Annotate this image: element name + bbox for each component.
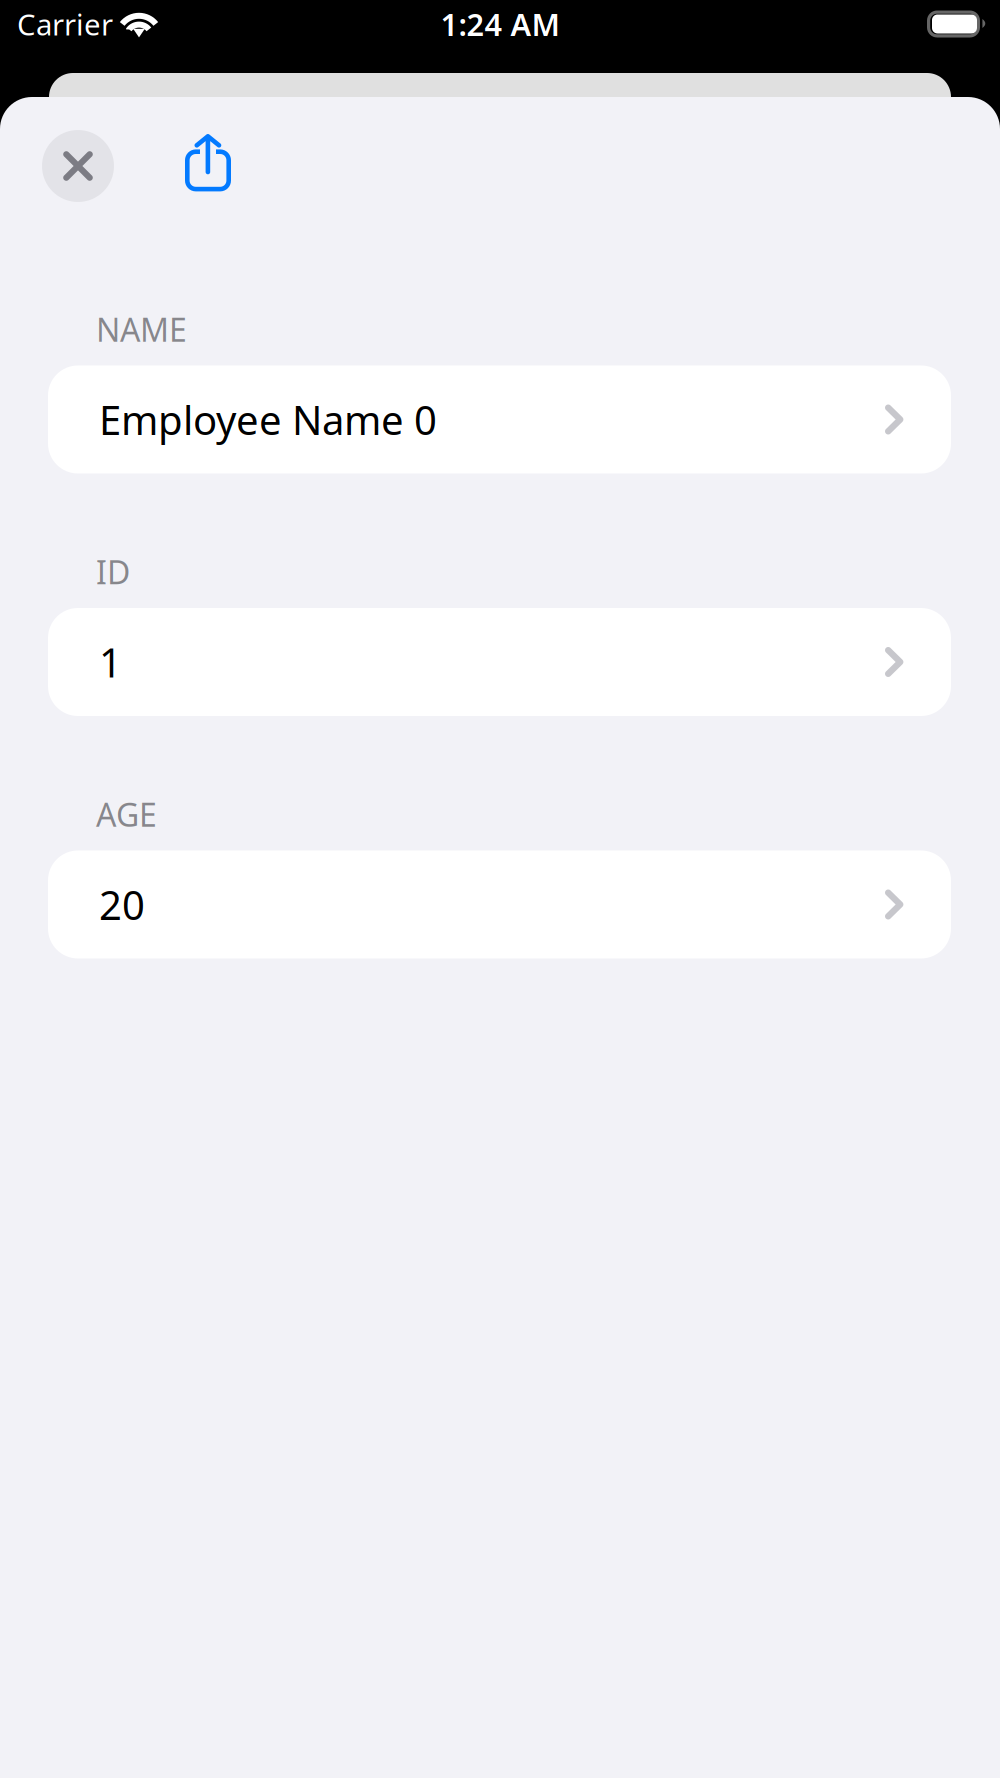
button[interactable]: Close <box>42 130 114 202</box>
button[interactable]: 1 <box>48 608 951 716</box>
staticText: NAME <box>96 308 187 350</box>
staticText: AGE <box>96 793 157 835</box>
staticText: 1:24 AM <box>440 4 559 44</box>
button[interactable]: Employee Name 0 <box>48 365 951 473</box>
staticText: Carrier <box>17 4 113 43</box>
button[interactable]: 20 <box>48 850 951 958</box>
staticText: 20 <box>99 878 145 931</box>
staticText: 1 <box>99 635 122 688</box>
button[interactable]: Share <box>172 130 244 196</box>
staticText: ID <box>96 550 130 593</box>
staticText: Employee Name 0 <box>99 393 437 446</box>
